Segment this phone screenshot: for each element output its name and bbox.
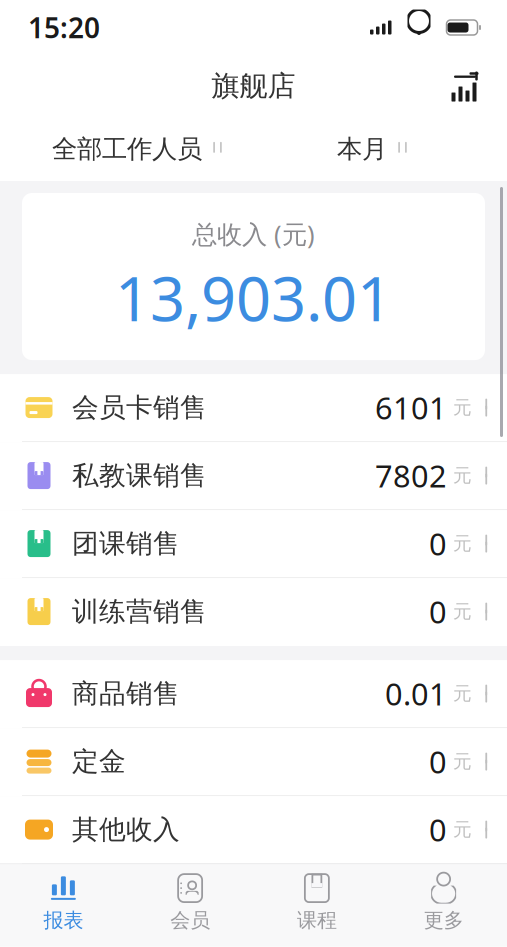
staticText: 旗舰店 — [211, 69, 295, 103]
staticText: 元 — [453, 750, 472, 773]
staticText: 元 — [453, 682, 472, 705]
staticText: 团课销售 — [72, 527, 180, 560]
button[interactable]: 本月 — [337, 119, 411, 178]
staticText: 更多 — [424, 908, 464, 933]
button[interactable]: 定金 — [0, 728, 507, 796]
button[interactable]: 更多 — [380, 864, 507, 947]
button[interactable]: 训练营销售 — [0, 578, 507, 646]
button[interactable]: 其他收入 — [0, 796, 507, 864]
staticText: 0 — [429, 741, 447, 782]
staticText: 报表 — [43, 908, 83, 933]
staticText: 15:20 — [28, 9, 100, 46]
button[interactable]: 课程 — [253, 864, 380, 947]
staticText: 课程 — [297, 908, 337, 933]
staticText: 本月 — [337, 133, 387, 164]
button[interactable]: 会员 — [127, 864, 254, 947]
button[interactable]: 统计报表 — [439, 61, 489, 111]
button[interactable]: 私教课销售 — [0, 442, 507, 510]
staticText: 商品销售 — [72, 677, 180, 710]
staticText: 0 — [429, 809, 447, 850]
staticText: 元 — [453, 532, 472, 555]
staticText: 总收入 (元) — [192, 217, 315, 251]
staticText: 其他收入 — [72, 813, 180, 846]
staticText: 元 — [453, 818, 472, 841]
staticText: 0.01 — [385, 673, 447, 714]
staticText: 元 — [453, 464, 472, 487]
staticText: 定金 — [72, 745, 126, 778]
staticText: 0 — [429, 523, 447, 564]
button[interactable]: 全部工作人员 — [52, 119, 226, 178]
staticText: 全部工作人员 — [52, 133, 202, 164]
staticText: 元 — [453, 396, 472, 419]
staticText: 私教课销售 — [72, 459, 207, 492]
staticText: 6101 — [375, 387, 447, 428]
staticText: 7802 — [375, 455, 447, 496]
button[interactable]: 商品销售 — [0, 660, 507, 728]
staticText: 会员卡销售 — [72, 391, 207, 424]
button[interactable]: 报表 — [0, 864, 127, 947]
staticText: 13,903.01 — [115, 257, 392, 338]
staticText: 训练营销售 — [72, 595, 207, 628]
button[interactable]: 会员卡销售 — [0, 374, 507, 442]
staticText: 0 — [429, 591, 447, 632]
button[interactable]: 团课销售 — [0, 510, 507, 578]
staticText: 元 — [453, 600, 472, 623]
staticText: 会员 — [170, 908, 210, 933]
